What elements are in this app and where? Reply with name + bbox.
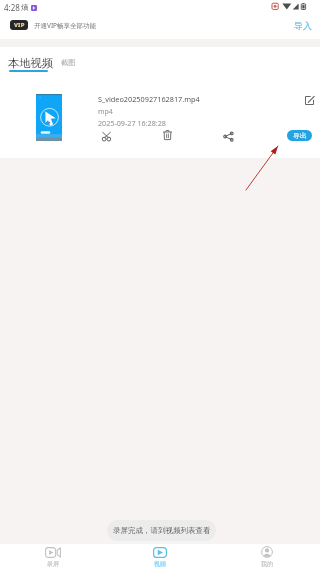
staticText: mp4	[98, 107, 113, 117]
button[interactable]: Rename	[303, 94, 315, 106]
button[interactable]: 我的	[213, 544, 320, 570]
staticText: 2025-09-27 16:28:28	[98, 118, 166, 128]
button[interactable]: 截图	[59, 58, 78, 67]
staticText: 截图	[61, 58, 76, 67]
staticText: VIP	[14, 21, 25, 29]
button[interactable]: Share	[221, 129, 235, 143]
staticText: 熵	[21, 3, 29, 12]
button[interactable]: Trim	[99, 129, 113, 143]
staticText: 导出	[293, 131, 307, 140]
button[interactable]: Video thumbnail	[36, 94, 62, 141]
staticText: 录屏完成，请到视频列表查看	[113, 526, 211, 535]
button[interactable]: Delete	[160, 128, 174, 142]
staticText: 开通VIP畅享全部功能	[34, 21, 97, 30]
staticText: 我的	[261, 560, 273, 568]
staticText: S_video20250927162817.mp4	[98, 94, 200, 104]
button[interactable]: 本地视频	[6, 55, 56, 71]
staticText: 导入	[294, 20, 312, 31]
button[interactable]: 视频	[106, 544, 213, 570]
button[interactable]: 导出	[287, 130, 312, 141]
staticText: 录屏	[47, 560, 59, 568]
staticText: 本地视频	[8, 56, 54, 70]
staticText: 4:28	[4, 2, 20, 13]
staticText: 视频	[154, 560, 166, 568]
button[interactable]: VIP	[8, 18, 99, 32]
button[interactable]: 导入	[292, 18, 314, 33]
button[interactable]: 录屏	[0, 544, 106, 570]
